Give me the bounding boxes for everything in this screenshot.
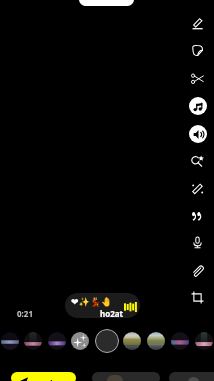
button[interactable]: Current lens	[95, 329, 119, 353]
button[interactable]: Attach link	[184, 257, 211, 284]
button[interactable]: Lens 2	[24, 332, 42, 350]
button[interactable]: Send To	[11, 372, 76, 381]
button[interactable]: Scan	[184, 147, 211, 174]
button[interactable]: ❤️✨💃🤚	[65, 293, 140, 318]
button[interactable]: Lens 1	[1, 332, 19, 350]
button[interactable]: Crop	[184, 284, 211, 311]
button[interactable]: Caption	[184, 202, 211, 229]
staticText: ho2at	[100, 308, 124, 318]
button[interactable]: Magic	[184, 175, 211, 202]
button[interactable]: Music	[184, 92, 211, 119]
staticText: ❤️✨💃🤚	[71, 297, 113, 308]
button[interactable]: Voice note	[184, 229, 211, 256]
button[interactable]: Stickers	[184, 37, 211, 64]
button[interactable]: Lens 7	[147, 332, 165, 350]
button[interactable]: Trim	[184, 65, 211, 92]
button[interactable]: Friends	[169, 372, 214, 381]
staticText: Send To	[33, 378, 64, 381]
button[interactable]: Lens 4	[71, 332, 89, 350]
button[interactable]: Lens 8	[171, 332, 189, 350]
button[interactable]: Sound	[184, 120, 211, 147]
button[interactable]: Lens 6	[123, 332, 141, 350]
button[interactable]: My Story	[92, 372, 160, 381]
button[interactable]: Lens 9	[195, 332, 213, 350]
staticText: 0:21	[17, 308, 33, 319]
button[interactable]: Draw	[184, 10, 211, 37]
button[interactable]: Lens 3	[48, 332, 66, 350]
